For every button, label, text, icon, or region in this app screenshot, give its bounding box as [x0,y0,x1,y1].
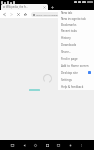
staticText: Add to Home screen [61,64,91,68]
button[interactable]: Help & feedback [58,83,94,90]
button[interactable]: Back [2,12,7,17]
button[interactable]: New incognito tab [58,16,94,22]
button[interactable]: Downloads [58,41,94,48]
button[interactable]: Find in page [58,55,94,62]
button[interactable]: Home [33,143,38,148]
staticText: Desktop site [61,71,88,75]
button[interactable]: Assistant [68,143,73,148]
button[interactable]: https://en.m.wikipedia.org/wiki/M [31,12,92,17]
button[interactable] [29,89,40,91]
staticText: New tab [61,11,91,15]
staticText: Recent tabs [61,29,91,33]
button[interactable]: Back [22,143,27,148]
staticText: Wikipedia, the fr… [6,5,43,9]
button[interactable]: Add to Home screen [58,62,94,69]
button[interactable]: Home [23,12,28,17]
staticText: https://en.m.wikipedia.org/wiki/M [36,13,76,16]
staticText: Downloads [61,43,91,47]
staticText: Help & feedback [61,85,91,89]
button[interactable]: More options [79,143,84,148]
staticText: Find in page [61,57,91,61]
button[interactable]: Recent apps [10,143,15,148]
button[interactable]: Recent tabs [58,28,94,34]
button[interactable]: Desktop site [58,69,94,76]
button[interactable]: New tab [50,5,55,10]
staticText: History [61,36,91,40]
button[interactable]: Close tab [43,6,46,9]
button[interactable]: History [58,34,94,41]
staticText: Share… [61,50,91,54]
staticText: New incognito tab [61,17,91,21]
button[interactable]: Bookmarks [58,22,94,28]
button[interactable]: Forward [9,12,14,17]
button[interactable]: Share… [58,48,94,55]
button[interactable]: Stop loading [16,12,21,17]
button[interactable]: New tab [58,10,94,16]
staticText: Bookmarks [61,23,91,27]
button[interactable]: Wikipedia, the fr… [1,4,48,10]
button[interactable]: Overview [45,143,50,148]
button[interactable]: Screenshot [56,143,61,148]
button[interactable]: Settings [58,76,94,83]
staticText: Settings [61,78,91,82]
